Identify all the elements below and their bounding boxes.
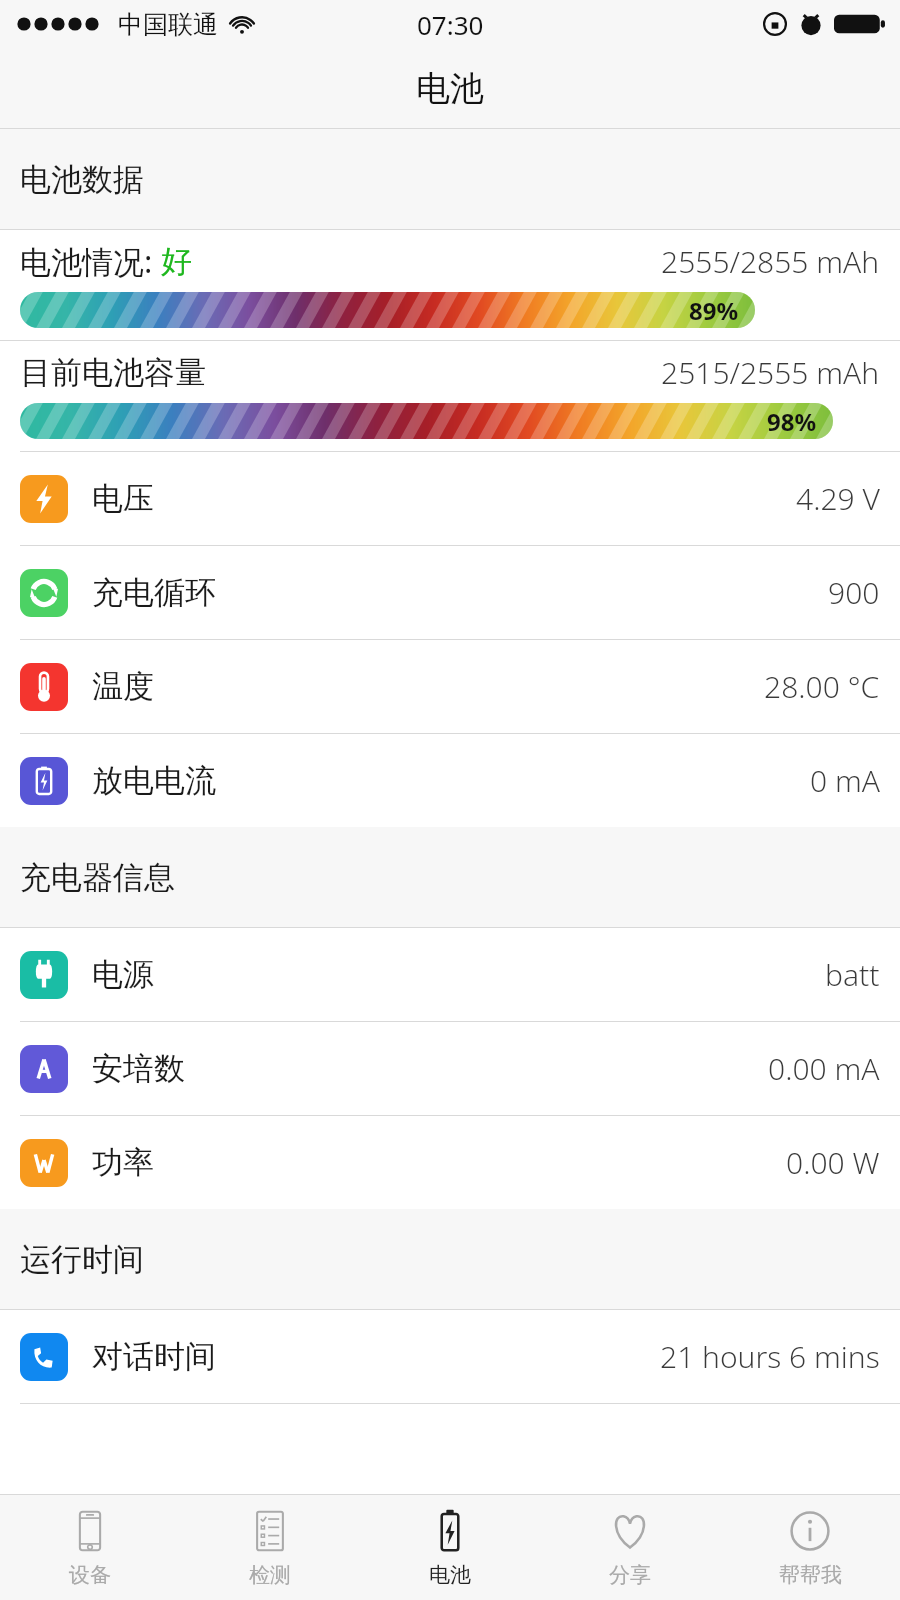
staticText: batt [825,954,880,995]
button[interactable]: 电压 [0,452,900,545]
button[interactable]: 对话时间 [0,1310,900,1403]
staticText: 900 [828,572,880,613]
staticText: 电压 [92,479,154,518]
button[interactable]: 电源 [0,928,900,1021]
staticText: 0.00 mA [768,1048,880,1089]
button[interactable]: 电池 [360,1495,540,1600]
staticText: 21 hours 6 mins [660,1336,880,1377]
staticText: 2555/2855 mAh [661,241,880,282]
staticText: 电池数据 [20,160,144,199]
staticText: 温度 [92,667,154,706]
staticText: 充电器信息 [20,858,175,897]
button[interactable]: 温度 [0,640,900,733]
staticText: 4.29 V [796,478,880,519]
staticText: 好 [161,242,192,281]
staticText: 功率 [92,1143,154,1182]
button[interactable]: 充电循环 [0,546,900,639]
staticText: 放电电流 [92,761,216,800]
staticText: 电源 [92,955,154,994]
button[interactable]: 安培数 [0,1022,900,1115]
staticText: 0 mA [810,760,880,801]
staticText: 98% [767,405,817,438]
staticText: 28.00 °C [764,666,880,707]
staticText: 对话时间 [92,1337,216,1376]
staticText: 电池 [416,67,484,110]
staticText: 中国联通 [118,9,218,40]
staticText: 2515/2555 mAh [661,352,880,393]
staticText: 分享 [609,1562,651,1588]
staticText: 0.00 W [786,1142,880,1183]
staticText: 电池情况: [20,240,161,282]
button[interactable]: 检测 [180,1495,360,1600]
staticText: 安培数 [92,1049,185,1088]
button[interactable]: 放电电流 [0,734,900,827]
staticText: 电池 [429,1562,471,1588]
staticText: 检测 [249,1562,291,1588]
button[interactable]: 设备 [0,1495,180,1600]
staticText: 运行时间 [20,1240,144,1279]
button[interactable]: 分享 [540,1495,720,1600]
button[interactable]: 功率 [0,1116,900,1209]
staticText: 帮帮我 [779,1562,842,1588]
staticText: 充电循环 [92,573,216,612]
staticText: 89% [689,294,739,327]
staticText: 设备 [69,1562,111,1588]
staticText: 07:30 [417,7,484,42]
button[interactable]: 帮帮我 [720,1495,900,1600]
staticText: 目前电池容量 [20,353,206,392]
